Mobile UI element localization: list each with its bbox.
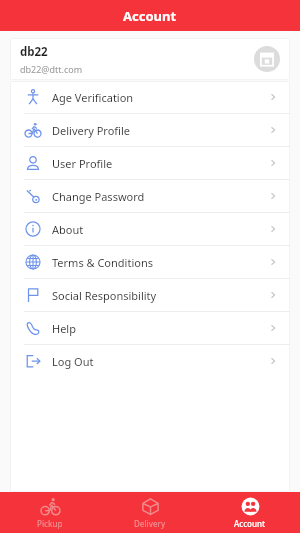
button[interactable]: Change Password: [10, 180, 290, 212]
button[interactable]: Log Out: [10, 345, 290, 377]
staticText: Delivery: [134, 518, 166, 529]
staticText: Terms & Conditions: [52, 255, 268, 270]
button[interactable]: Delivery: [100, 497, 200, 529]
staticText: User Profile: [52, 156, 268, 171]
other: Profile avatar: [254, 46, 280, 72]
button[interactable]: User Profile: [10, 147, 290, 179]
staticText: Delivery Profile: [52, 123, 268, 138]
button[interactable]: About: [10, 213, 290, 245]
button[interactable]: Social Responsibility: [10, 279, 290, 311]
button[interactable]: Account: [200, 497, 300, 529]
button[interactable]: Pickup: [0, 497, 100, 529]
button[interactable]: Age Verification: [10, 81, 290, 113]
staticText: Pickup: [37, 518, 63, 529]
staticText: Account: [234, 518, 266, 529]
button[interactable]: Delivery Profile: [10, 114, 290, 146]
staticText: Social Responsibility: [52, 288, 268, 303]
staticText: Age Verification: [52, 90, 268, 105]
staticText: db22: [20, 44, 48, 60]
button[interactable]: Help: [10, 312, 290, 344]
staticText: Change Password: [52, 189, 268, 204]
staticText: About: [52, 222, 268, 237]
staticText: db22@dtt.com: [20, 63, 83, 75]
staticText: Account: [123, 7, 177, 25]
button[interactable]: db22: [10, 38, 290, 80]
staticText: Help: [52, 321, 268, 336]
button[interactable]: Terms & Conditions: [10, 246, 290, 278]
staticText: Log Out: [52, 354, 268, 369]
